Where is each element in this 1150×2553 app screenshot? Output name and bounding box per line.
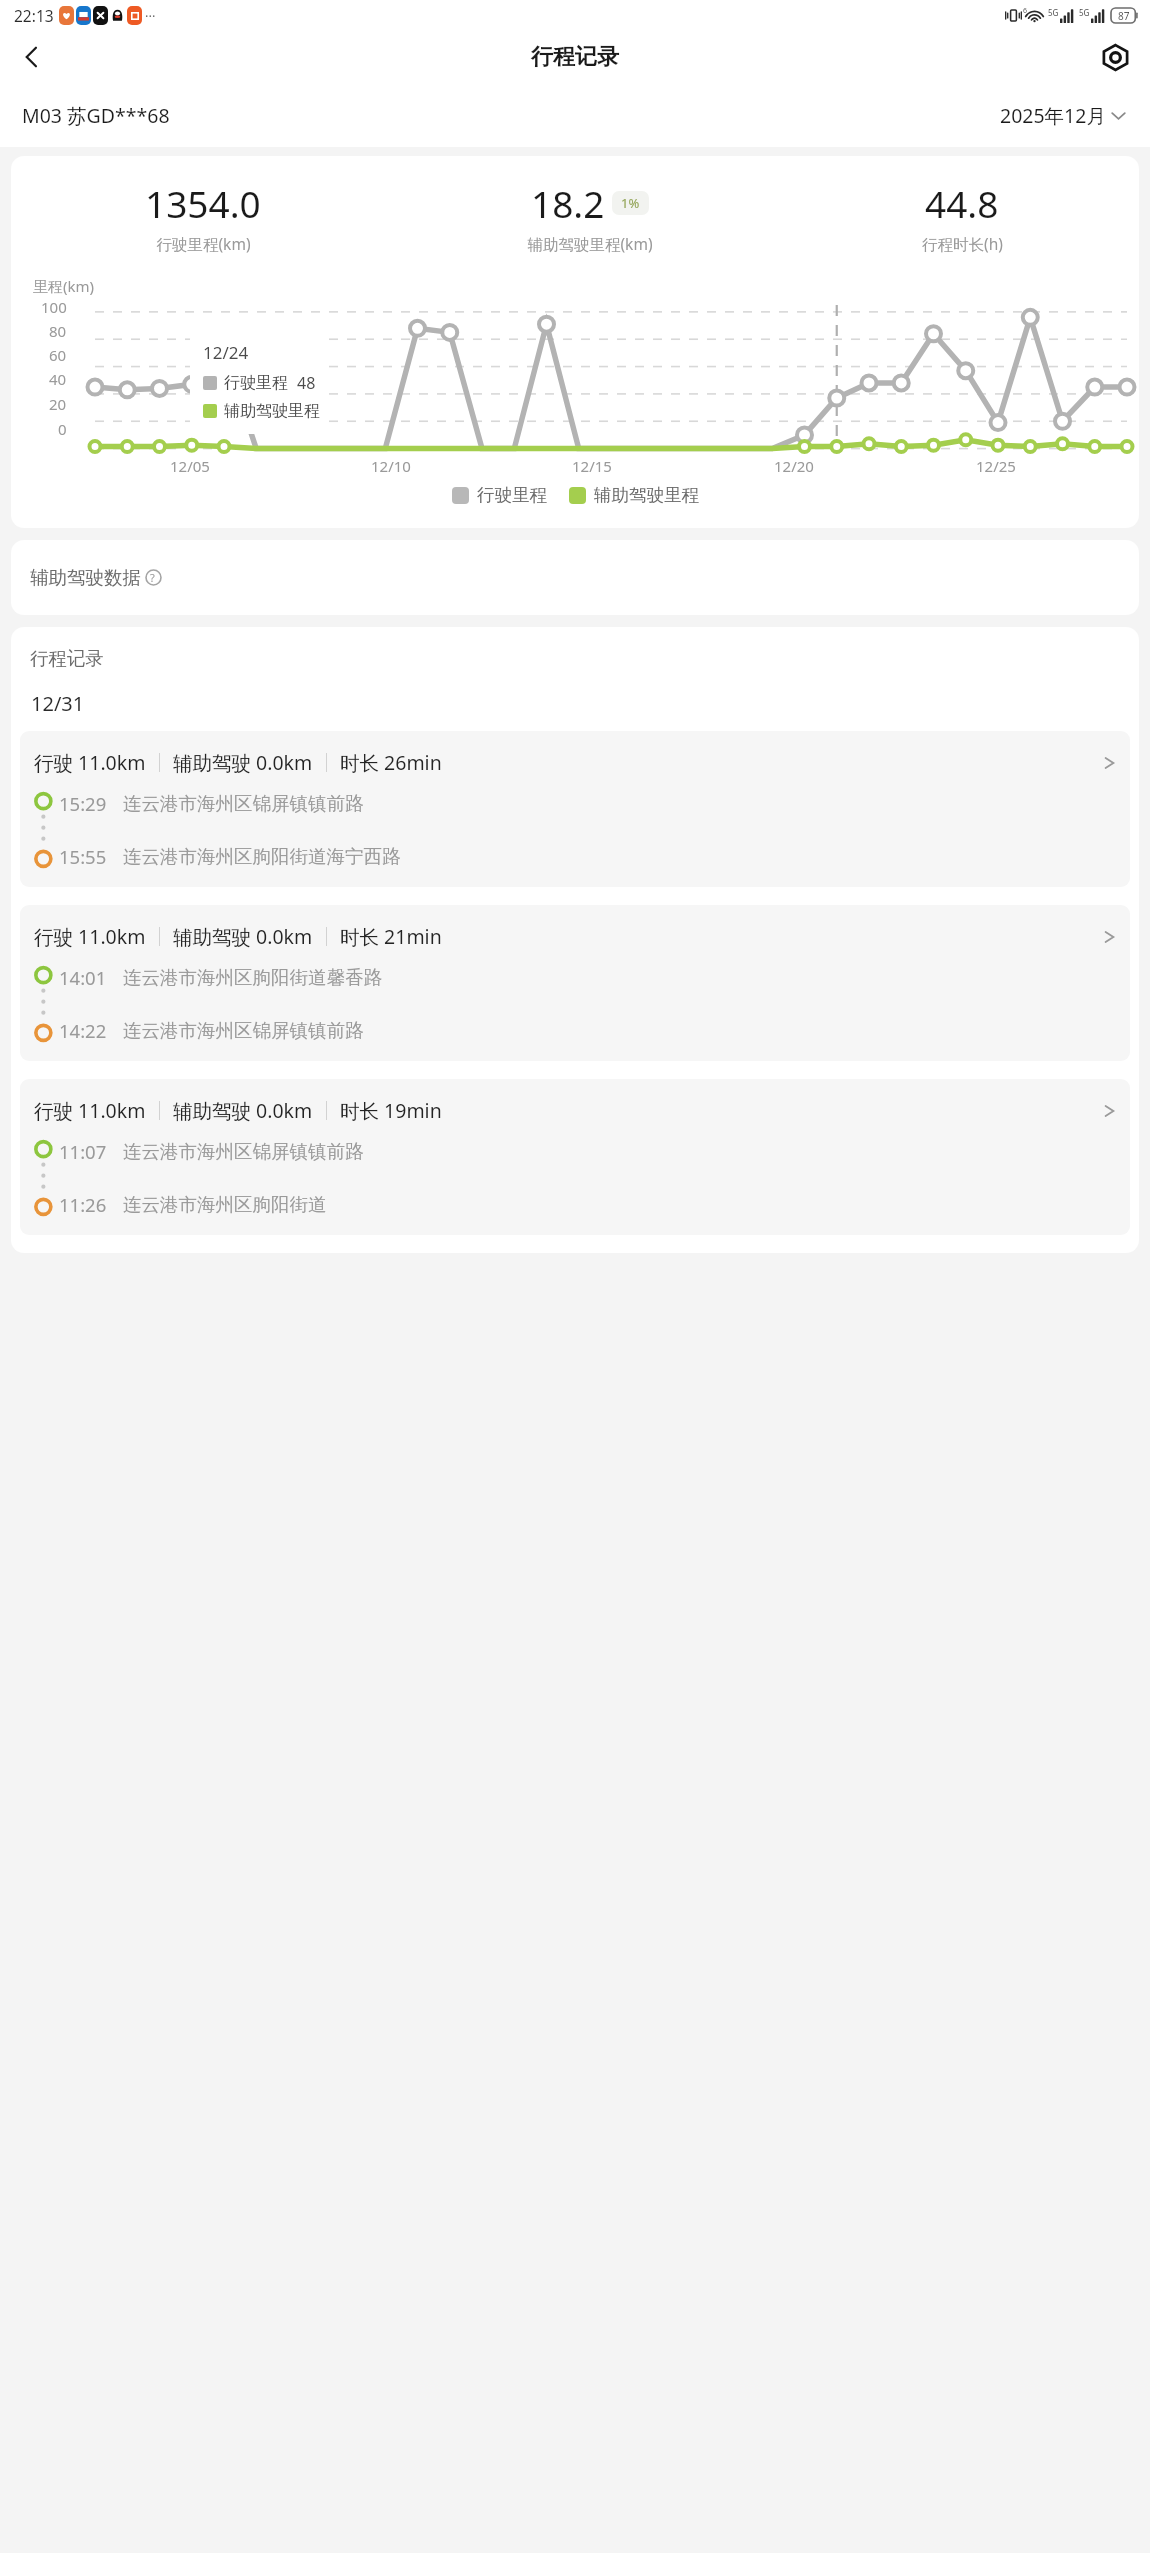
staticText: 行驶里程: [477, 484, 547, 506]
staticText: 100: [41, 297, 67, 317]
staticText: 辅助驾驶里程: [224, 401, 320, 421]
staticText: 11:26: [59, 1192, 107, 1217]
staticText: 里程(km): [33, 276, 95, 296]
staticText: 12/20: [774, 456, 814, 476]
staticText: 48: [297, 372, 316, 394]
staticText: 14:22: [59, 1018, 107, 1043]
button[interactable]: 行驶 11.0km: [20, 1079, 1130, 1235]
staticText: 行程记录: [531, 43, 619, 71]
staticText: M03 苏GD***68: [22, 102, 170, 129]
staticText: 5G: [1079, 7, 1090, 18]
staticText: 连云港市海州区朐阳街道馨香路: [123, 966, 382, 989]
button[interactable]: Back: [8, 33, 56, 81]
staticText: 14:01: [59, 965, 107, 990]
button[interactable]: 行驶 11.0km: [20, 905, 1130, 1061]
staticText: 辅助驾驶 0.0km: [173, 1097, 313, 1124]
button[interactable]: 辅助驾驶数据: [30, 566, 167, 589]
staticText: 2025年12月: [1000, 102, 1106, 129]
staticText: 60: [49, 345, 67, 365]
staticText: 连云港市海州区锦屏镇镇前路: [123, 792, 364, 815]
staticText: 辅助驾驶 0.0km: [173, 749, 313, 776]
staticText: 行驶 11.0km: [34, 1097, 146, 1124]
staticText: 20: [49, 394, 67, 414]
staticText: 辅助驾驶 0.0km: [173, 923, 313, 950]
staticText: 1%: [621, 194, 640, 212]
staticText: 11:07: [59, 1139, 107, 1164]
staticText: 12/25: [976, 456, 1016, 476]
staticText: 15:55: [59, 844, 107, 869]
staticText: 15:29: [59, 791, 107, 816]
staticText: 12/15: [572, 456, 612, 476]
staticText: 87: [1118, 9, 1130, 23]
staticText: 连云港市海州区锦屏镇镇前路: [123, 1140, 364, 1163]
staticText: 行程时长(h): [922, 233, 1003, 254]
staticText: 12/05: [170, 456, 210, 476]
staticText: 22:13: [14, 5, 54, 26]
staticText: 辅助驾驶数据: [30, 566, 141, 589]
button[interactable]: 2025年12月: [998, 96, 1128, 135]
staticText: 80: [49, 321, 67, 341]
staticText: ?: [150, 570, 155, 585]
staticText: 44.8: [925, 178, 999, 228]
staticText: 时长 21min: [340, 923, 442, 950]
staticText: 6: [1023, 6, 1028, 16]
staticText: 12/31: [31, 690, 85, 717]
staticText: 连云港市海州区锦屏镇镇前路: [123, 1019, 364, 1042]
staticText: 18.2: [531, 178, 605, 228]
staticText: 12/10: [371, 456, 411, 476]
staticText: 行驶 11.0km: [34, 749, 146, 776]
staticText: 辅助驾驶里程(km): [527, 233, 653, 254]
staticText: 0: [58, 419, 67, 439]
staticText: 5G: [1048, 7, 1059, 18]
staticText: 辅助驾驶里程: [594, 484, 699, 506]
staticText: 行驶里程: [224, 373, 288, 393]
button[interactable]: Settings: [1092, 34, 1138, 80]
staticText: ···: [145, 7, 156, 25]
staticText: 行驶里程(km): [156, 233, 251, 254]
staticText: 40: [49, 369, 67, 389]
staticText: 行程记录: [30, 647, 104, 670]
staticText: 12/24: [203, 341, 249, 364]
staticText: 时长 19min: [340, 1097, 442, 1124]
staticText: 时长 26min: [340, 749, 442, 776]
staticText: 行驶 11.0km: [34, 923, 146, 950]
staticText: 连云港市海州区朐阳街道: [123, 1193, 327, 1216]
staticText: 1354.0: [145, 178, 261, 228]
button[interactable]: 行驶 11.0km: [20, 731, 1130, 887]
staticText: 连云港市海州区朐阳街道海宁西路: [123, 845, 401, 868]
